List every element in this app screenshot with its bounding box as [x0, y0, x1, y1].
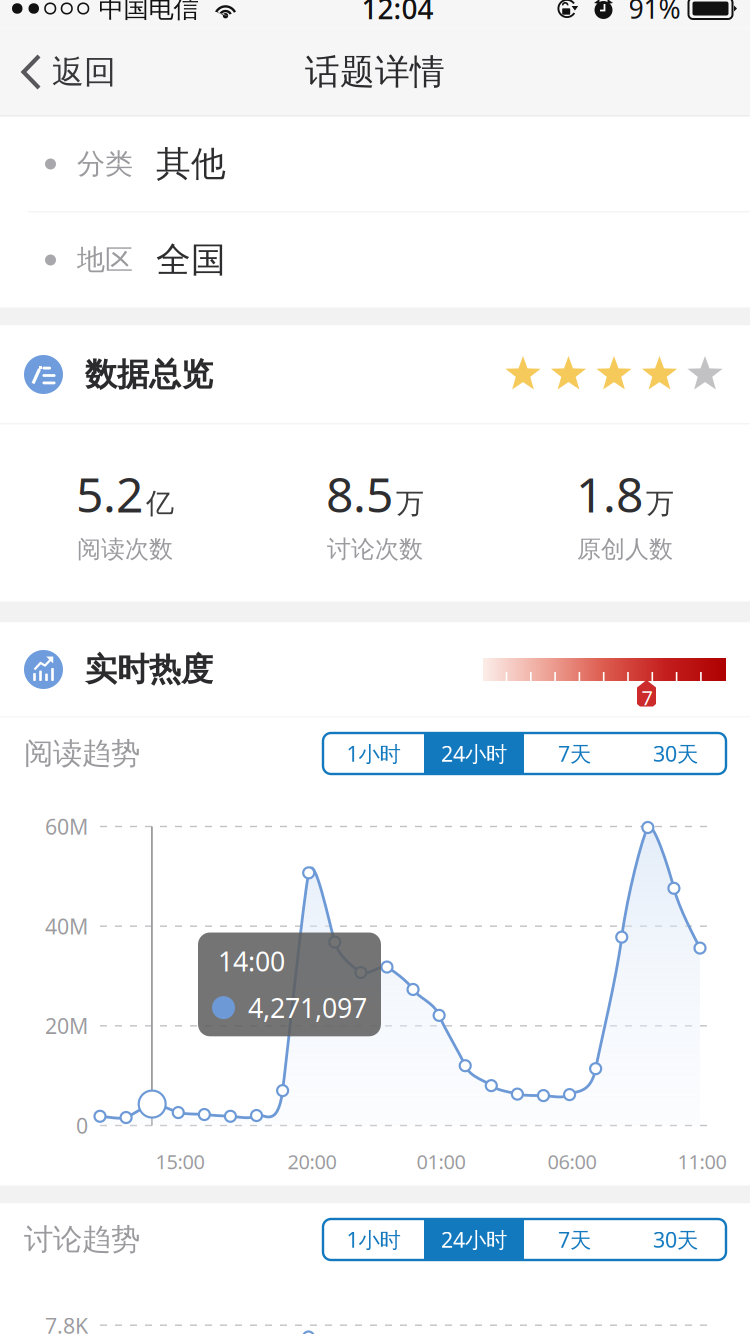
- staticText: 91%: [628, 0, 680, 26]
- button[interactable]: 24小时: [424, 1219, 524, 1260]
- staticText: 8.5: [326, 462, 393, 526]
- staticText: 20:00: [287, 1148, 336, 1175]
- staticText: 分类: [77, 147, 133, 181]
- staticText: 1.8: [576, 462, 643, 526]
- staticText: 14:00: [218, 943, 285, 979]
- staticText: 讨论次数: [327, 535, 423, 564]
- staticText: 阅读次数: [77, 535, 173, 564]
- button[interactable]: 1小时: [323, 733, 424, 774]
- staticText: 7: [641, 684, 652, 711]
- staticText: 返回: [52, 52, 116, 92]
- staticText: 原创人数: [577, 535, 673, 564]
- staticText: 30天: [653, 739, 698, 768]
- staticText: 7.8K: [45, 1311, 88, 1334]
- staticText: 中国电信: [98, 0, 198, 24]
- staticText: 1小时: [346, 1225, 400, 1254]
- staticText: 其他: [156, 143, 226, 185]
- button[interactable]: 30天: [625, 733, 726, 774]
- staticText: 4,271,097: [248, 990, 367, 1025]
- staticText: 15:00: [155, 1148, 204, 1175]
- staticText: 12:04: [361, 0, 433, 27]
- staticText: 阅读趋势: [24, 735, 140, 771]
- staticText: 7天: [558, 1225, 591, 1254]
- staticText: 24小时: [441, 1225, 507, 1254]
- button[interactable]: 1小时: [323, 1219, 424, 1260]
- staticText: 11:00: [677, 1148, 726, 1175]
- staticText: 06:00: [547, 1148, 596, 1175]
- staticText: 1小时: [346, 739, 400, 768]
- button[interactable]: 分类: [0, 116, 750, 211]
- staticText: 5.2: [76, 462, 143, 526]
- button[interactable]: 返回: [0, 38, 116, 106]
- staticText: 万: [646, 486, 674, 521]
- staticText: 地区: [77, 243, 133, 277]
- staticText: 60M: [45, 812, 88, 841]
- staticText: 40M: [45, 912, 88, 940]
- staticText: 7天: [558, 739, 591, 768]
- staticText: 实时热度: [85, 650, 213, 689]
- staticText: 20M: [45, 1012, 88, 1040]
- staticText: 01:00: [416, 1148, 465, 1175]
- button[interactable]: 24小时: [424, 733, 524, 774]
- staticText: 30天: [653, 1225, 698, 1254]
- staticText: 话题详情: [305, 51, 445, 93]
- button[interactable]: 7天: [524, 1219, 625, 1260]
- staticText: 万: [396, 486, 424, 521]
- button[interactable]: 30天: [625, 1219, 726, 1260]
- button[interactable]: 地区: [0, 212, 750, 307]
- staticText: 0: [76, 1111, 88, 1140]
- staticText: 讨论趋势: [24, 1221, 140, 1257]
- staticText: 数据总览: [85, 355, 213, 394]
- button[interactable]: 7天: [524, 733, 625, 774]
- staticText: 全国: [156, 239, 226, 281]
- staticText: 24小时: [441, 739, 507, 768]
- staticText: 亿: [146, 486, 174, 521]
